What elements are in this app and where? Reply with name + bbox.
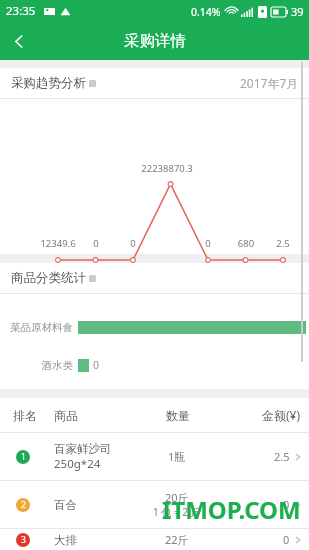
staticText: 2017年7月 bbox=[240, 75, 299, 91]
staticText: 1 bbox=[21, 451, 26, 463]
staticText: 0 bbox=[283, 497, 290, 512]
staticText: 20斤 bbox=[165, 490, 189, 505]
staticText: 0 bbox=[107, 237, 159, 250]
staticText: 百家鲜沙司 bbox=[54, 442, 112, 456]
staticText: 0 bbox=[283, 532, 290, 547]
staticText: ITMOP.COM bbox=[162, 493, 301, 526]
staticText: 酒水类 bbox=[0, 359, 73, 372]
staticText: 大排 bbox=[54, 533, 77, 547]
staticText: 百合 bbox=[54, 498, 77, 512]
staticText: 0.14% bbox=[191, 5, 221, 19]
staticText: 18日 bbox=[257, 267, 309, 280]
staticText: 0 bbox=[182, 237, 234, 250]
staticText: 22斤 bbox=[165, 532, 189, 547]
staticText: 250g*24 bbox=[54, 456, 101, 472]
button[interactable]: 3 bbox=[0, 529, 309, 550]
staticText: 12日 bbox=[32, 267, 84, 280]
staticText: 金额(¥) bbox=[262, 407, 301, 423]
staticText: 13日 bbox=[70, 267, 122, 280]
staticText: 排名 bbox=[13, 408, 37, 423]
staticText: 680 bbox=[220, 237, 272, 250]
staticText: 0 bbox=[93, 358, 100, 372]
staticText: 菜品原材料食 bbox=[0, 321, 73, 334]
staticText: 1 包 = 2 斤 bbox=[153, 505, 201, 519]
staticText: 22238870.3 bbox=[141, 162, 193, 175]
staticText: 23:35 bbox=[6, 3, 36, 19]
staticText: 1瓶 bbox=[168, 449, 186, 464]
staticText: 2.5 bbox=[274, 449, 290, 464]
staticText: 3 bbox=[21, 534, 26, 546]
staticText: 0 bbox=[70, 237, 122, 250]
staticText: 39 bbox=[291, 4, 304, 19]
staticText: 采购趋势分析 bbox=[11, 75, 86, 91]
staticText: 数量 bbox=[166, 408, 190, 423]
staticText: 12349.6 bbox=[32, 237, 84, 250]
button[interactable]: 1 bbox=[0, 433, 309, 480]
button[interactable]: 2 bbox=[0, 481, 309, 528]
staticText: 采购详情 bbox=[124, 31, 186, 51]
staticText: 2.5 bbox=[257, 237, 309, 250]
staticText: 商品 bbox=[54, 408, 78, 423]
staticText: 商品分类统计 bbox=[11, 270, 86, 286]
button[interactable]: Back bbox=[0, 22, 38, 60]
staticText: 2 bbox=[21, 499, 26, 511]
